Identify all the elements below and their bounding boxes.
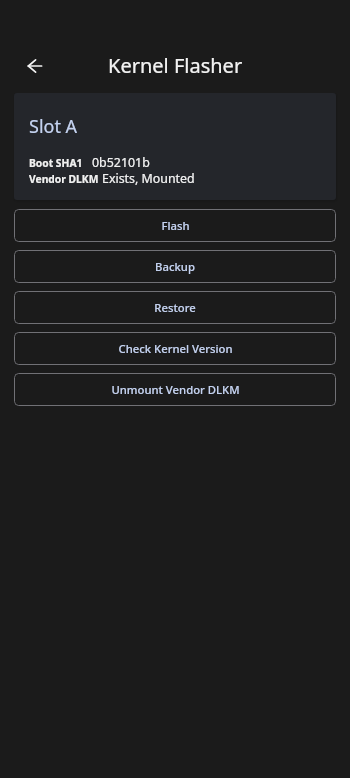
button[interactable]: Check Kernel Version [14,332,336,365]
staticText: Restore [154,300,196,315]
button[interactable]: Back [17,48,53,84]
button[interactable]: Slot A [14,93,336,200]
staticText: Unmount Vendor DLKM [111,382,240,397]
staticText: Kernel Flasher [108,52,243,79]
button[interactable]: Unmount Vendor DLKM [14,373,336,406]
staticText: Exists, Mounted [102,170,195,187]
staticText: Vendor DLKM [29,172,99,186]
staticText: Flash [161,218,190,233]
staticText: Check Kernel Version [118,341,233,356]
staticText: Backup [155,259,195,274]
button[interactable]: Restore [14,291,336,324]
button[interactable]: Flash [14,209,336,242]
staticText: Slot A [29,114,78,139]
staticText: 0b52101b [92,154,150,171]
button[interactable]: Backup [14,250,336,283]
staticText: Boot SHA1 [29,156,83,170]
